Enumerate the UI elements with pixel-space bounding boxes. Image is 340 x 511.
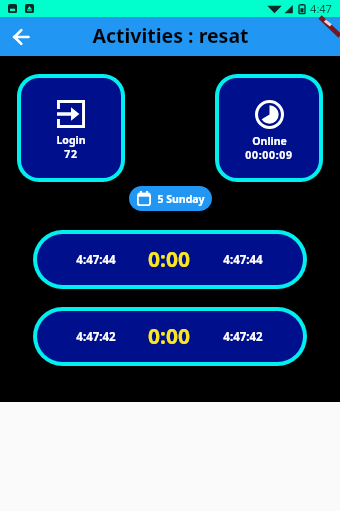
- staticText: Activities : resat: [92, 22, 249, 49]
- button[interactable]: Back: [5, 21, 36, 52]
- staticText: 4:47:42: [76, 329, 116, 345]
- staticText: 4:47:44: [76, 252, 116, 268]
- staticText: 00:00:09: [245, 148, 293, 162]
- staticText: 4:47:42: [223, 329, 263, 345]
- button[interactable]: 4:47:44: [37, 234, 303, 285]
- staticText: 4:47: [310, 1, 332, 16]
- staticText: 4:47:44: [223, 252, 263, 268]
- staticText: 0:00: [148, 322, 190, 351]
- button[interactable]: 4:47:42: [37, 311, 303, 362]
- staticText: Login: [56, 133, 86, 147]
- staticText: Online: [252, 134, 287, 148]
- button[interactable]: Login: [21, 78, 121, 178]
- button[interactable]: 5 Sunday: [129, 186, 212, 211]
- staticText: 0:00: [148, 245, 190, 274]
- staticText: 5 Sunday: [157, 192, 205, 206]
- button[interactable]: Online: [219, 78, 319, 178]
- staticText: 72: [64, 147, 78, 161]
